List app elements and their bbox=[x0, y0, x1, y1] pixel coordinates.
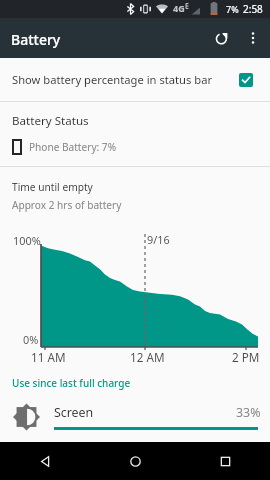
button[interactable]: Show battery percentage in status bar bbox=[0, 58, 270, 101]
staticText: 100% bbox=[13, 233, 41, 248]
staticText: 12 AM bbox=[130, 349, 165, 365]
button[interactable]: Recent apps bbox=[180, 442, 270, 480]
staticText: 4G bbox=[173, 2, 185, 14]
staticText: 7% bbox=[226, 3, 239, 15]
staticText: 11 AM bbox=[31, 349, 66, 365]
button[interactable]: Battery Status bbox=[0, 102, 270, 166]
staticText: 2:58 bbox=[243, 2, 263, 16]
staticText: 33% bbox=[236, 404, 261, 421]
staticText: Battery bbox=[11, 30, 61, 49]
button[interactable]: Screen bbox=[0, 396, 270, 442]
staticText: Screen bbox=[54, 404, 94, 421]
button[interactable]: More options bbox=[239, 24, 267, 52]
staticText: Time until empty bbox=[12, 180, 93, 194]
button[interactable]: Use since last full charge bbox=[0, 371, 270, 395]
staticText: 0% bbox=[23, 332, 39, 347]
button[interactable]: Back bbox=[0, 442, 90, 480]
staticText: Show battery percentage in status bar bbox=[12, 72, 213, 87]
staticText: Battery Status bbox=[12, 113, 89, 129]
staticText: 9/16 bbox=[147, 232, 170, 247]
staticText: 2 PM bbox=[232, 349, 260, 365]
button[interactable]: Refresh bbox=[209, 24, 237, 52]
button[interactable]: Home bbox=[90, 442, 180, 480]
staticText: Use since last full charge bbox=[12, 376, 131, 390]
staticText: Phone Battery: 7% bbox=[29, 140, 117, 154]
staticText: Approx 2 hrs of battery bbox=[12, 198, 122, 212]
